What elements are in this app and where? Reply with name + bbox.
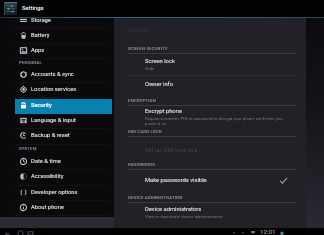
- staticText: Location services: [31, 86, 77, 93]
- button[interactable]: Recent apps: [26, 229, 35, 235]
- staticText: Apps: [31, 47, 45, 54]
- button[interactable]: Screen lock: [128, 58, 296, 71]
- staticText: Require a numeric PIN or password to dec…: [145, 116, 283, 126]
- staticText: Language & input: [31, 117, 76, 124]
- button[interactable]: Home: [16, 229, 25, 235]
- staticText: Set up SIM card lock: [145, 147, 198, 154]
- staticText: PERSONAL: [19, 60, 43, 65]
- staticText: Device administrators: [145, 206, 202, 213]
- staticText: Storage: [31, 17, 51, 24]
- button[interactable]: About phone: [11, 200, 112, 215]
- staticText: DEVICE ADMINISTRATION: [128, 195, 183, 200]
- button[interactable]: Battery: [11, 28, 112, 43]
- button[interactable]: Back: [3, 229, 12, 235]
- button[interactable]: Encrypt phone: [128, 108, 296, 126]
- staticText: About phone: [31, 204, 64, 211]
- button[interactable]: Make passwords visible: [128, 177, 296, 186]
- staticText: 12:01: [260, 228, 276, 235]
- button[interactable]: Owner info: [128, 81, 296, 88]
- staticText: Developer options: [31, 189, 78, 196]
- staticText: Encrypt phone: [145, 108, 182, 115]
- staticText: Accounts & sync: [31, 71, 74, 78]
- staticText: Settings: [22, 5, 44, 12]
- staticText: Make passwords visible: [145, 177, 207, 184]
- button[interactable]: Status icons and clock: [232, 228, 285, 235]
- button[interactable]: Storage: [11, 13, 112, 28]
- button[interactable]: Security: [11, 98, 112, 113]
- staticText: Screen lock: [145, 58, 175, 65]
- button[interactable]: Language & input: [11, 113, 112, 128]
- button[interactable]: Device administrators: [128, 206, 296, 219]
- staticText: Owner info: [145, 81, 173, 88]
- staticText: Battery: [31, 32, 50, 39]
- staticText: PASSWORDS: [128, 162, 155, 167]
- button[interactable]: Backup & reset: [11, 128, 112, 143]
- staticText: SCREEN SECURITY: [128, 46, 168, 51]
- staticText: SIM CARD LOCK: [128, 129, 162, 134]
- staticText: Security: [31, 102, 52, 109]
- staticText: SYSTEM: [19, 146, 37, 151]
- button[interactable]: Apps: [11, 43, 112, 58]
- staticText: ENCRYPTION: [128, 98, 156, 103]
- staticText: Accessibility: [31, 173, 64, 180]
- staticText: Security: [128, 27, 150, 34]
- staticText: View or deactivate device administrators: [145, 214, 223, 219]
- button[interactable]: Date & time: [11, 154, 112, 169]
- staticText: Backup & reset: [31, 132, 70, 139]
- button[interactable]: Developer options: [11, 185, 112, 200]
- button[interactable]: Location services: [11, 82, 112, 97]
- staticText: Slide: [145, 66, 155, 71]
- button[interactable]: Accounts & sync: [11, 67, 112, 82]
- staticText: Date & time: [31, 158, 61, 165]
- button[interactable]: Settings, up: [0, 0, 324, 17]
- button[interactable]: Set up SIM card lock: [128, 147, 296, 154]
- button[interactable]: Accessibility: [11, 169, 112, 184]
